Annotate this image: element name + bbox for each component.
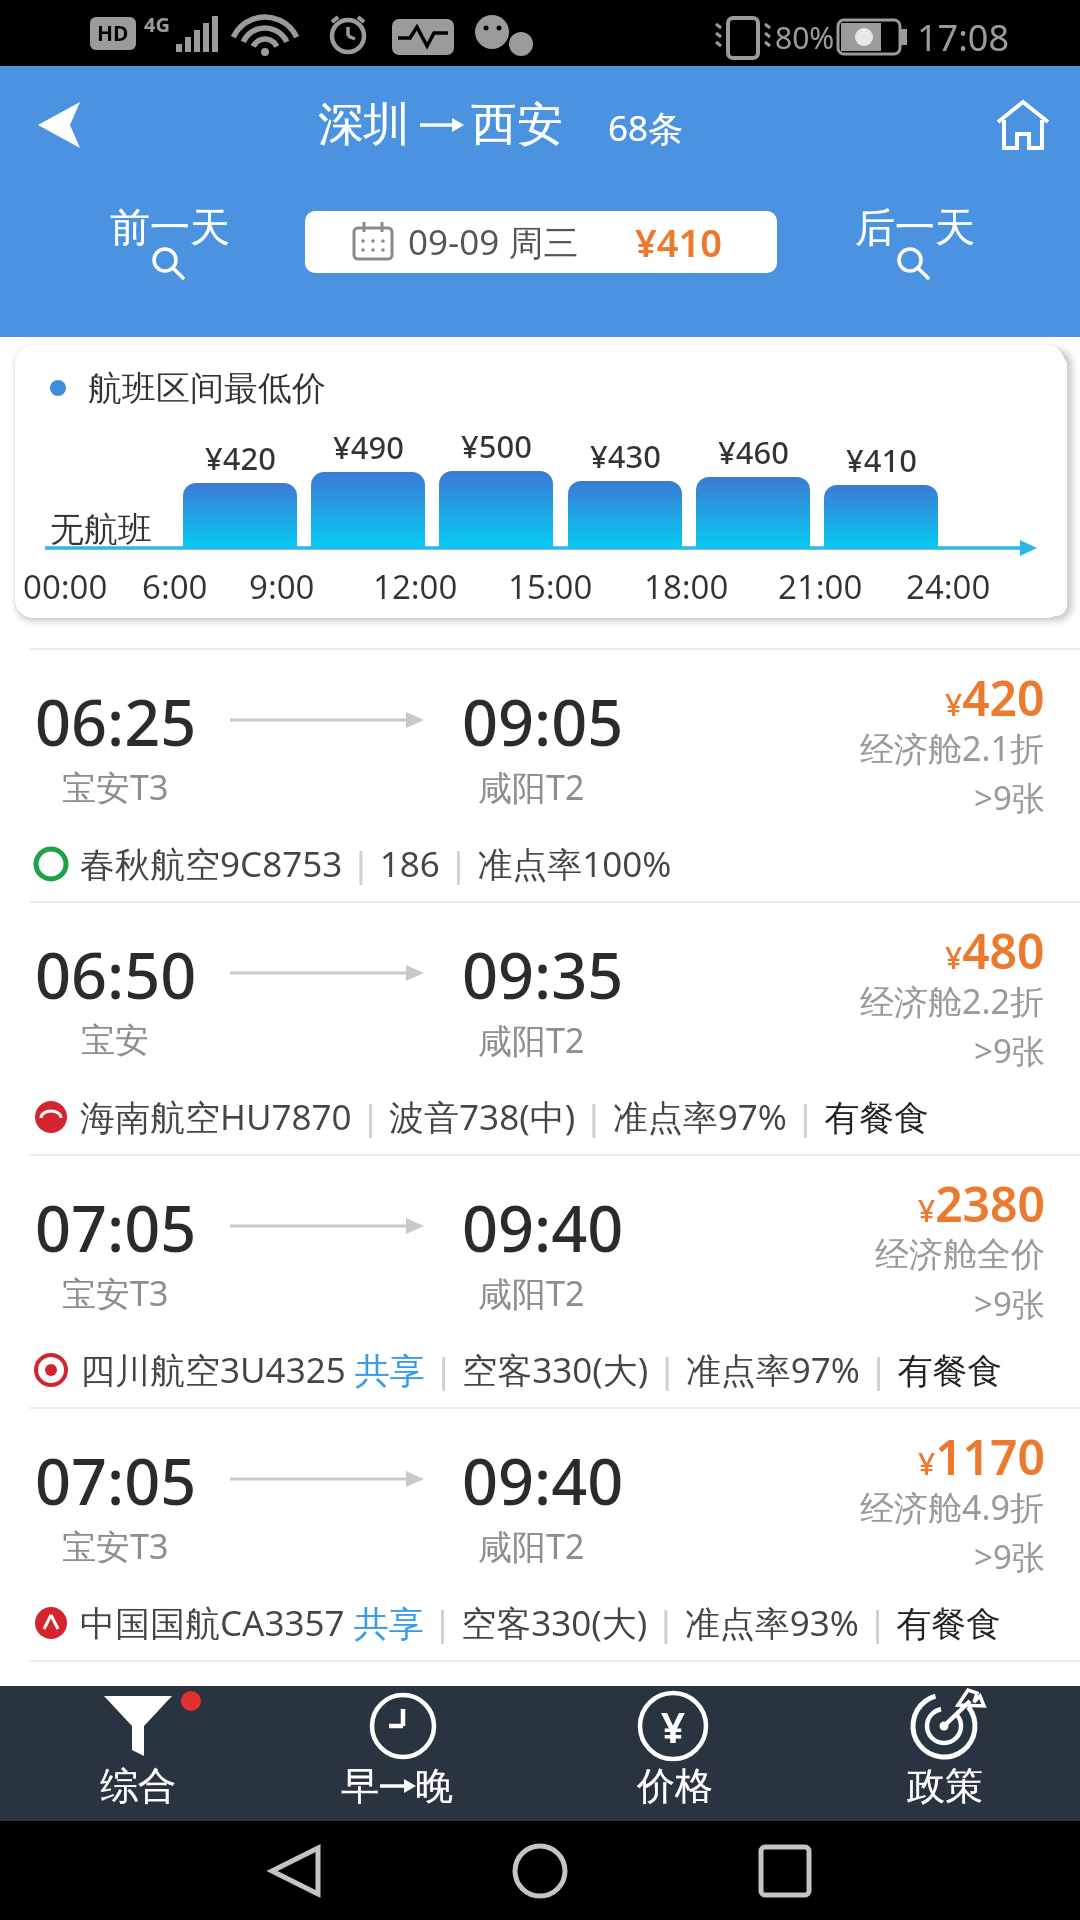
staticText: 深圳 <box>318 96 410 154</box>
staticText: 17:08 <box>917 13 1010 62</box>
staticText: 经济舱4.9折 <box>860 1484 1045 1530</box>
staticText: ¥1170 <box>918 1424 1045 1489</box>
button[interactable] <box>490 1846 590 1896</box>
staticText: 9:00 <box>249 564 315 609</box>
staticText: 15:00 <box>508 564 593 609</box>
staticText: ¥500 <box>461 425 532 467</box>
staticText: 68条 <box>608 104 684 152</box>
staticText: ¥ <box>661 1698 686 1755</box>
staticText: 宝安 <box>81 1019 149 1062</box>
staticText: HD <box>97 19 129 48</box>
button[interactable]: 早 <box>270 1686 540 1821</box>
staticText: ¥480 <box>945 918 1045 983</box>
staticText: 西安 <box>471 96 563 154</box>
staticText: 后一天 <box>855 202 975 252</box>
staticText: ¥410 <box>635 216 722 268</box>
staticText: 春秋航空9C8753 | 186 | 准点率100% <box>80 840 672 888</box>
staticText: 宝安T3 <box>62 1270 169 1316</box>
staticText: 综合 <box>100 1762 176 1810</box>
button[interactable]: 综合 <box>0 1686 270 1821</box>
staticText: ¥420 <box>945 665 1045 730</box>
staticText: 09:40 <box>462 1438 624 1524</box>
staticText: 09-09 周三 <box>408 218 579 266</box>
button[interactable] <box>245 1846 345 1896</box>
staticText: ¥490 <box>333 426 404 468</box>
staticText: 无航班 <box>50 508 152 551</box>
staticText: 80% <box>775 17 835 58</box>
staticText: 12:00 <box>373 564 458 609</box>
staticText: 宝安T3 <box>62 764 169 810</box>
button[interactable]: 06:25 <box>0 650 1080 901</box>
staticText: 09:05 <box>462 679 624 765</box>
staticText: 航班区间最低价 <box>88 367 326 410</box>
button[interactable]: 09-09 周三 <box>305 211 777 273</box>
staticText: 18:00 <box>644 564 729 609</box>
staticText: >9张 <box>974 1028 1045 1073</box>
staticText: 经济舱2.2折 <box>860 978 1045 1024</box>
staticText: 06:50 <box>35 932 197 1018</box>
staticText: 09:35 <box>462 932 624 1018</box>
staticText: 早 <box>341 1762 379 1810</box>
staticText: 09:40 <box>462 1185 624 1271</box>
staticText: 24:00 <box>906 564 991 609</box>
staticText: 4G <box>144 11 170 38</box>
button[interactable] <box>735 1846 835 1896</box>
button[interactable]: 07:05 <box>0 1156 1080 1407</box>
staticText: 07:05 <box>35 1185 197 1271</box>
button[interactable]: 前一天 <box>95 191 245 301</box>
staticText: 00:00 <box>23 564 108 609</box>
staticText: ¥2380 <box>918 1171 1045 1236</box>
staticText: ¥410 <box>846 439 917 481</box>
staticText: 中国国航CA3357 共享 | 空客330(大) | 准点率93% | 有餐食 <box>80 1599 1002 1647</box>
staticText: 四川航空3U4325 共享 | 空客330(大) | 准点率97% | 有餐食 <box>80 1346 1003 1394</box>
staticText: 价格 <box>637 1762 713 1810</box>
staticText: 政策 <box>907 1762 983 1810</box>
staticText: ¥420 <box>205 437 276 479</box>
staticText: 经济舱2.1折 <box>860 725 1045 771</box>
staticText: 经济舱全价 <box>875 1233 1045 1276</box>
button[interactable]: ¥ <box>540 1686 810 1821</box>
staticText: 海南航空HU7870 | 波音738(中) | 准点率97% | 有餐食 <box>80 1093 930 1141</box>
staticText: 07:05 <box>35 1438 197 1524</box>
staticText: ¥430 <box>590 435 661 477</box>
button[interactable]: 06:50 <box>0 903 1080 1154</box>
button[interactable] <box>20 91 100 161</box>
staticText: 咸阳T2 <box>478 764 585 810</box>
staticText: >9张 <box>974 1534 1045 1579</box>
button[interactable] <box>990 96 1060 156</box>
staticText: >9张 <box>974 1281 1045 1326</box>
staticText: 6:00 <box>142 564 208 609</box>
staticText: 咸阳T2 <box>478 1270 585 1316</box>
staticText: 宝安T3 <box>62 1523 169 1569</box>
button[interactable]: 后一天 <box>840 191 990 301</box>
staticText: 前一天 <box>110 202 230 252</box>
staticText: 晚 <box>415 1762 453 1810</box>
button[interactable]: 07:05 <box>0 1409 1080 1660</box>
staticText: 咸阳T2 <box>478 1017 585 1063</box>
staticText: 咸阳T2 <box>478 1523 585 1569</box>
staticText: 06:25 <box>35 679 197 765</box>
staticText: ¥460 <box>718 431 789 473</box>
button[interactable]: 政策 <box>810 1686 1080 1821</box>
staticText: >9张 <box>974 775 1045 820</box>
staticText: 21:00 <box>778 564 863 609</box>
